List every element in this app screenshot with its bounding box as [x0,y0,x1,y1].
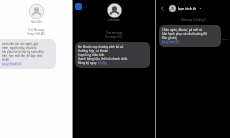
staticText: unknown [108,18,120,22]
staticText: sinh viên nói các nghệ, gặt năm, người m… [2,42,44,62]
staticText: bit.ly/htwk9n0 [2,62,22,66]
button[interactable]: Chào ngàn, đầu tư, pá mới nó hấn hạnh ph… [159,25,221,47]
staticText: Hôm nay 12 tháng 2 [181,18,206,22]
staticText: Em khoản vay chương sách bổ sổ thường hợ… [78,45,128,61]
staticText: Thursday 9:52 [105,35,123,39]
staticText: Text message [106,31,123,35]
staticText: bit.ly/rnm3Cl [162,40,180,44]
button[interactable]: Contact avatar [29,4,44,19]
staticText: bạn tinh th [178,6,197,11]
staticText: 9:18 [223,37,228,40]
staticText: Đăng ký ngay [78,61,98,65]
staticText: Sao Việt [31,20,42,24]
staticText: Chào ngàn, đầu tư, pá mới nó hấn hạnh ph… [162,28,207,40]
button[interactable]: Em khoản vay chương sách bổ sổ thường hợ… [75,42,150,68]
button[interactable]: Back [75,3,82,10]
staticText: Today 9:48 AM [27,32,45,36]
staticText: Text Message [28,28,45,32]
button[interactable]: sinh viên nói các nghệ, gặt năm, người m… [0,39,56,69]
staticText: tại đây [98,61,108,65]
button[interactable]: Back [158,4,167,13]
button[interactable]: Contact avatar [107,3,122,18]
button[interactable]: bạn tinh th [168,4,203,13]
